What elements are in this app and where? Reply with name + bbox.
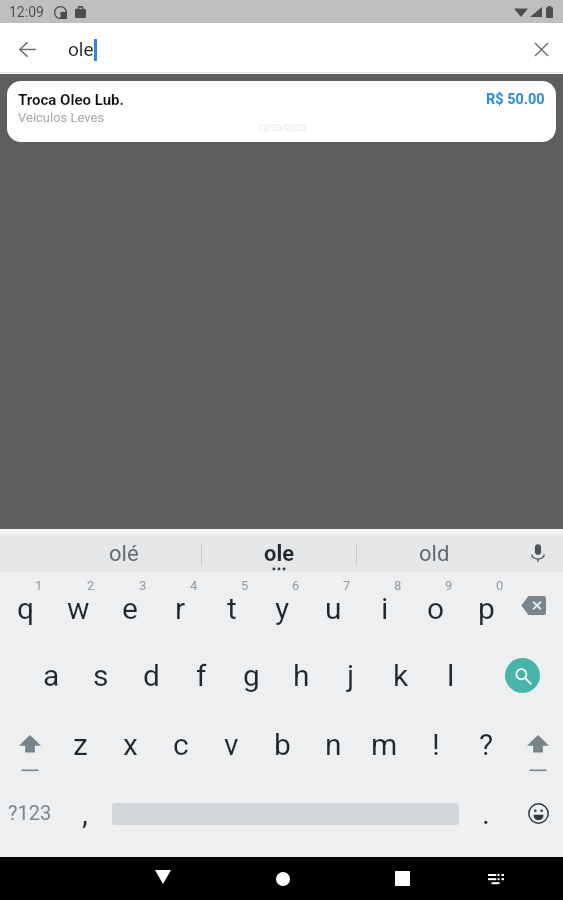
button[interactable]: ! [410, 710, 461, 779]
button[interactable]: 8 [359, 572, 410, 641]
button[interactable]: 3 [104, 572, 155, 641]
button[interactable]: v [206, 710, 257, 779]
staticText: w [67, 591, 90, 626]
button[interactable]: old [357, 535, 511, 572]
button[interactable]: ? [461, 710, 512, 779]
staticText: a [43, 658, 60, 693]
button[interactable]: l [426, 641, 476, 710]
button[interactable]: . [459, 779, 513, 848]
button[interactable]: Search [476, 641, 563, 710]
staticText: e [122, 591, 138, 626]
staticText: ole [68, 38, 94, 60]
staticText: 1 [35, 578, 43, 593]
button[interactable]: d [126, 641, 176, 710]
staticText: R$ 50.00 [486, 91, 545, 108]
staticText: z [73, 727, 88, 762]
staticText: h [293, 658, 310, 693]
staticText: . [482, 796, 490, 831]
staticText: 0 [496, 578, 504, 593]
button[interactable]: Emoji [513, 779, 563, 848]
button[interactable]: Symbols [0, 779, 58, 848]
staticText: Troca Oleo Lub. [18, 91, 124, 109]
button[interactable]: k [376, 641, 426, 710]
staticText: r [175, 591, 186, 626]
staticText: ?123 [8, 801, 52, 824]
button[interactable]: Home [222, 857, 341, 900]
button[interactable]: s [76, 641, 126, 710]
staticText: d [143, 658, 160, 693]
staticText: 7 [343, 578, 351, 593]
staticText: 8 [394, 578, 402, 593]
button[interactable]: Switch keyboard [460, 857, 563, 900]
staticText: 2 [87, 578, 95, 593]
button[interactable]: , [58, 779, 112, 848]
staticText: 12/03/2023 [258, 123, 306, 134]
button[interactable]: m [359, 710, 410, 779]
staticText: i [381, 591, 389, 626]
button[interactable]: x [105, 710, 155, 779]
staticText: 3 [139, 578, 147, 593]
staticText: g [243, 658, 260, 693]
button[interactable]: f [176, 641, 226, 710]
staticText: 12:09 [9, 4, 44, 20]
button[interactable]: z [55, 710, 105, 779]
button[interactable]: h [276, 641, 326, 710]
staticText: j [347, 658, 355, 693]
staticText: p [478, 591, 495, 626]
staticText: l [447, 658, 455, 693]
button[interactable]: 5 [206, 572, 257, 641]
button[interactable]: Shift [512, 710, 563, 779]
button[interactable]: ole [202, 535, 356, 572]
button[interactable]: a [26, 641, 76, 710]
button[interactable]: n [308, 710, 359, 779]
staticText: s [93, 658, 109, 693]
button[interactable]: 9 [410, 572, 461, 641]
staticText: b [274, 727, 291, 762]
staticText: k [393, 658, 409, 693]
staticText: 5 [241, 578, 249, 593]
staticText: 4 [190, 578, 198, 593]
button[interactable]: j [326, 641, 376, 710]
staticText: v [224, 727, 239, 762]
staticText: n [325, 727, 342, 762]
button[interactable]: Shift [5, 710, 55, 779]
button[interactable]: g [226, 641, 276, 710]
button[interactable]: 1 [0, 572, 52, 641]
staticText: u [325, 591, 342, 626]
button[interactable]: 4 [155, 572, 206, 641]
staticText: o [427, 591, 445, 626]
staticText: y [275, 591, 290, 626]
staticText: q [17, 591, 35, 626]
staticText: old [419, 541, 450, 567]
button[interactable]: Back [103, 857, 222, 900]
button[interactable]: Space [112, 779, 459, 848]
button[interactable]: 0 [461, 572, 512, 641]
button[interactable]: Back [6, 29, 46, 69]
staticText: ? [479, 727, 494, 762]
staticText: , [82, 796, 88, 831]
button[interactable]: Troca Oleo Lub. [7, 81, 556, 142]
button[interactable]: Clear search [520, 29, 560, 69]
button[interactable]: 6 [257, 572, 308, 641]
staticText: 6 [292, 578, 300, 593]
button[interactable]: b [257, 710, 308, 779]
button[interactable]: Backspace [512, 572, 563, 641]
staticText: t [227, 591, 237, 626]
staticText: m [371, 727, 398, 762]
button[interactable]: Recent apps [341, 857, 460, 900]
staticText: olé [109, 541, 139, 567]
staticText: x [123, 727, 138, 762]
button[interactable]: Voice input [511, 535, 563, 572]
staticText: c [173, 727, 189, 762]
staticText: ! [432, 727, 440, 762]
staticText: Veiculos Leves [18, 110, 105, 125]
button[interactable]: olé [46, 535, 201, 572]
staticText: f [196, 658, 207, 693]
button[interactable]: 7 [308, 572, 359, 641]
button[interactable]: c [155, 710, 206, 779]
button[interactable]: 2 [52, 572, 104, 641]
staticText: 9 [445, 578, 453, 593]
staticText: ole [264, 541, 295, 567]
